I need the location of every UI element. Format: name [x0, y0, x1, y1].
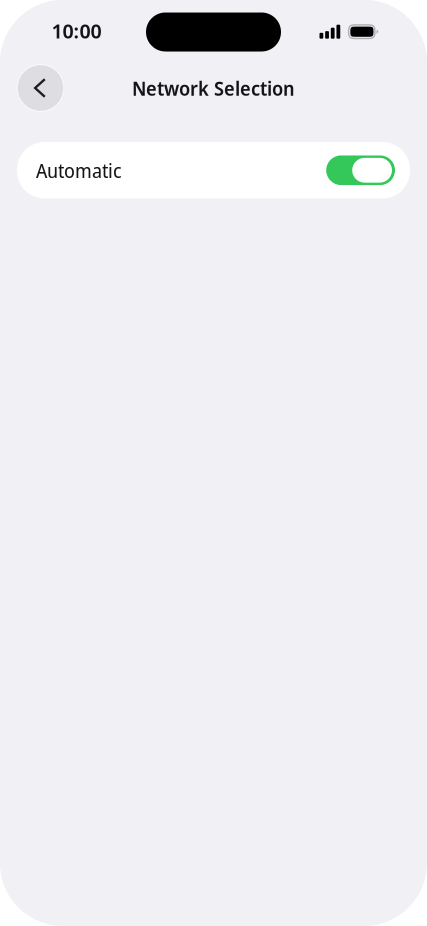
button[interactable]: Automatic [17, 142, 410, 198]
button[interactable]: Back [17, 64, 64, 112]
staticText: Automatic [36, 157, 122, 184]
staticText: 10:00 [51, 17, 101, 44]
staticText: Network Selection [132, 74, 295, 102]
